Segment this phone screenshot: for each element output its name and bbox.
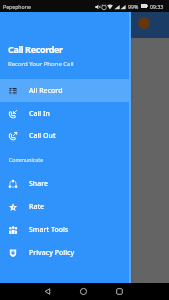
button[interactable]: Call Out bbox=[0, 125, 130, 147]
staticText: Pepephone bbox=[3, 3, 31, 10]
staticText: Privacy Policy bbox=[29, 248, 75, 258]
button[interactable]: Back bbox=[39, 283, 56, 300]
staticText: 99% bbox=[128, 3, 139, 10]
staticText: Smart Tools bbox=[29, 225, 69, 235]
button[interactable]: Record bbox=[138, 17, 150, 29]
button[interactable]: All Record bbox=[0, 79, 130, 102]
button[interactable]: Close navigation drawer bbox=[0, 0, 169, 300]
button[interactable]: Home bbox=[75, 283, 92, 300]
button[interactable]: Rate bbox=[0, 195, 130, 218]
staticText: Call In bbox=[29, 109, 50, 119]
button[interactable]: Share bbox=[0, 172, 130, 195]
button[interactable]: Smart Tools bbox=[0, 218, 130, 241]
staticText: All Record bbox=[29, 86, 63, 96]
staticText: Rate bbox=[29, 202, 45, 212]
button[interactable]: Recents bbox=[111, 283, 128, 300]
staticText: 09:33 bbox=[150, 3, 164, 10]
staticText: Call Out bbox=[29, 131, 56, 141]
staticText: Call Recorder bbox=[8, 43, 63, 55]
button[interactable]: Privacy Policy bbox=[0, 241, 130, 264]
staticText: Record Your Phone Call bbox=[8, 60, 74, 68]
staticText: Communicate bbox=[9, 156, 44, 163]
button[interactable]: Call In bbox=[0, 102, 130, 125]
staticText: Share bbox=[29, 179, 49, 189]
